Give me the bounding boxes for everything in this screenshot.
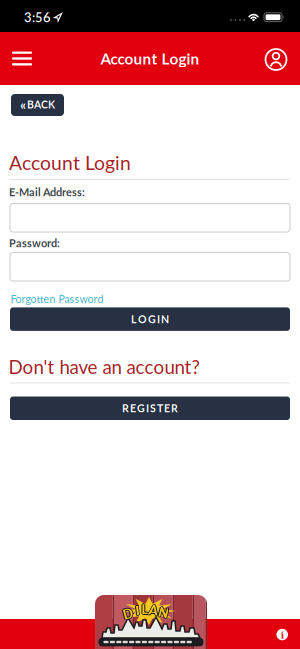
- staticText: i: [281, 628, 284, 641]
- staticText: I: [135, 603, 139, 618]
- button[interactable]: R E G I S T E R: [10, 396, 290, 420]
- staticText: N: [158, 606, 168, 621]
- staticText: Don't have an account?: [8, 356, 199, 378]
- staticText: I: [135, 602, 139, 617]
- staticText: A: [149, 602, 158, 617]
- button[interactable]: Menu: [0, 43, 42, 73]
- staticText: D: [123, 605, 133, 620]
- staticText: L: [141, 602, 148, 617]
- staticText: D: [123, 607, 133, 622]
- staticText: N: [158, 605, 168, 620]
- staticText: E-Mail Address:: [9, 185, 85, 199]
- staticText: D: [123, 606, 133, 621]
- staticText: 3:56: [24, 9, 51, 25]
- button[interactable]: Info: [268, 620, 296, 649]
- staticText: L: [141, 601, 148, 616]
- staticText: Account Login: [9, 151, 131, 174]
- staticText: Password:: [9, 236, 60, 250]
- staticText: N: [158, 604, 168, 619]
- button[interactable]: «: [11, 94, 64, 116]
- button[interactable]: Account: [265, 41, 300, 75]
- staticText: A: [148, 603, 157, 618]
- staticText: D: [124, 606, 134, 621]
- staticText: D: [122, 606, 132, 621]
- button[interactable]: Forgotten Password: [10, 291, 103, 307]
- staticText: I: [135, 603, 139, 618]
- staticText: L: [142, 602, 149, 617]
- button[interactable]: L O G I N: [10, 307, 290, 331]
- staticText: Account Login: [100, 49, 199, 68]
- staticText: BACK: [27, 98, 55, 111]
- staticText: L: [141, 603, 148, 618]
- staticText: L: [141, 602, 148, 617]
- staticText: A: [149, 603, 158, 618]
- staticText: I: [136, 603, 140, 618]
- staticText: N: [159, 605, 169, 620]
- staticText: A: [150, 603, 159, 618]
- staticText: «: [20, 96, 26, 113]
- staticText: L O G I N: [131, 313, 169, 325]
- staticText: Forgotten Password: [10, 293, 103, 305]
- staticText: I: [135, 604, 139, 619]
- staticText: A: [149, 603, 158, 618]
- staticText: N: [158, 605, 168, 620]
- staticText: R E G I S T E R: [122, 402, 178, 415]
